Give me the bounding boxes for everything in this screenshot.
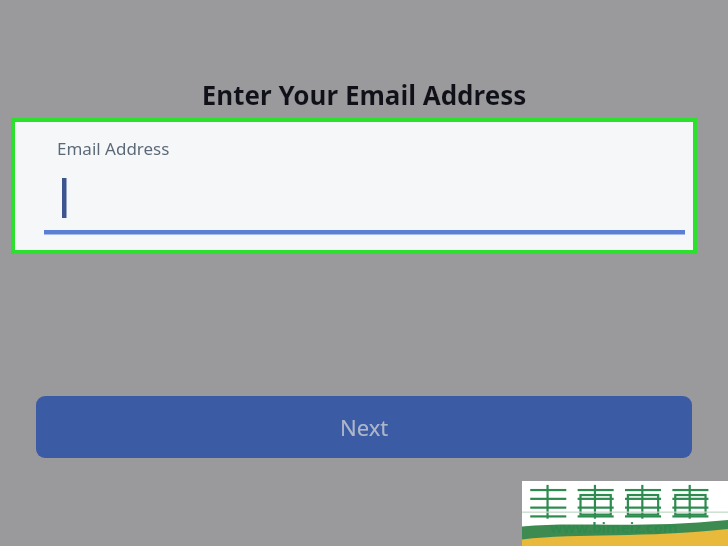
other: Watermark bimeiz.com xyxy=(522,481,728,546)
staticText: www.bimeiz.com xyxy=(550,517,678,537)
staticText: Email Address xyxy=(57,137,170,160)
staticText: Next xyxy=(340,412,389,442)
button[interactable]: Next xyxy=(36,396,692,458)
button[interactable]: Email Address xyxy=(11,118,697,254)
staticText: Enter Your Email Address xyxy=(0,77,728,546)
